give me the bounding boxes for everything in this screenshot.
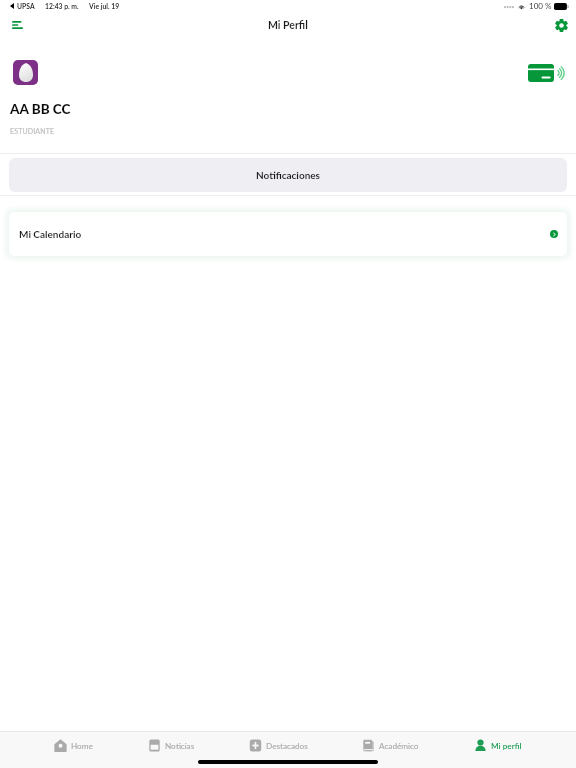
button[interactable]: Settings xyxy=(546,12,576,38)
staticText: Home xyxy=(71,741,93,751)
button[interactable]: Destacados xyxy=(249,733,308,758)
staticText: 12:43 p. m. xyxy=(45,2,79,10)
button[interactable]: Académico xyxy=(362,733,419,758)
staticText: AA BB CC xyxy=(10,101,71,117)
staticText: UPSA xyxy=(17,2,35,10)
staticText: Mi perfil xyxy=(491,741,522,751)
staticText: Mi Perfil xyxy=(268,19,308,32)
staticText: Mi Calendario xyxy=(19,228,82,240)
staticText: Vie jul. 19 xyxy=(89,2,120,10)
staticText: Destacados xyxy=(266,741,308,751)
button[interactable]: Tarjeta xyxy=(524,60,569,86)
button[interactable]: Menu xyxy=(2,12,32,38)
staticText: Notificaciones xyxy=(256,169,321,181)
button[interactable]: Mi perfil xyxy=(474,733,522,758)
button[interactable]: Notificaciones xyxy=(9,158,567,192)
button[interactable]: Noticias xyxy=(148,733,195,758)
button[interactable]: Home xyxy=(54,733,93,758)
button[interactable]: Mi Calendario xyxy=(9,212,567,256)
staticText: Noticias xyxy=(165,741,195,751)
staticText: ESTUDIANTE xyxy=(10,127,55,135)
staticText: 100 % xyxy=(529,1,552,11)
staticText: Académico xyxy=(379,741,419,751)
